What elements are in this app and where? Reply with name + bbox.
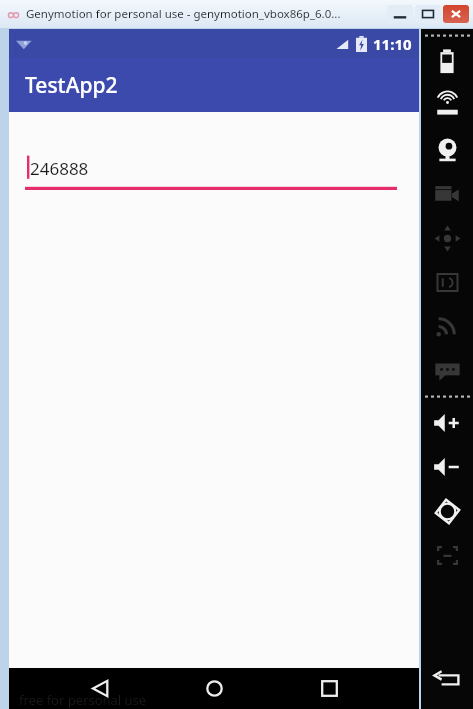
button[interactable]: Fullscreen [421, 533, 473, 577]
button[interactable]: Minimize [387, 5, 413, 23]
staticText: 11:10 [373, 34, 412, 54]
staticText: 246888 [30, 157, 89, 180]
button[interactable]: Network [421, 304, 473, 348]
button[interactable]: Back [76, 668, 124, 709]
button[interactable]: Camera [421, 128, 473, 172]
button[interactable]: Back [421, 657, 473, 701]
staticText: TestApp2 [25, 71, 118, 100]
button[interactable]: Dpad [421, 216, 473, 260]
button[interactable]: Video recording [421, 172, 473, 216]
button[interactable]: Identifiers [421, 260, 473, 304]
staticText: free for personal use [19, 691, 147, 709]
button[interactable]: GPS [421, 84, 473, 128]
button[interactable]: Volume up [421, 401, 473, 445]
button[interactable]: Home [190, 668, 238, 709]
button[interactable]: Battery [421, 40, 473, 84]
button[interactable]: Rotate [421, 489, 473, 533]
button[interactable]: 246888 [25, 150, 397, 190]
staticText: Genymotion for personal use - genymotion… [26, 6, 341, 22]
button[interactable]: TestApp2 [9, 58, 419, 112]
button[interactable]: Restore [415, 5, 441, 23]
button[interactable]: Close [443, 5, 469, 23]
button[interactable]: Recent apps [305, 668, 353, 709]
button[interactable]: Volume down [421, 445, 473, 489]
button[interactable]: Messaging [421, 348, 473, 392]
